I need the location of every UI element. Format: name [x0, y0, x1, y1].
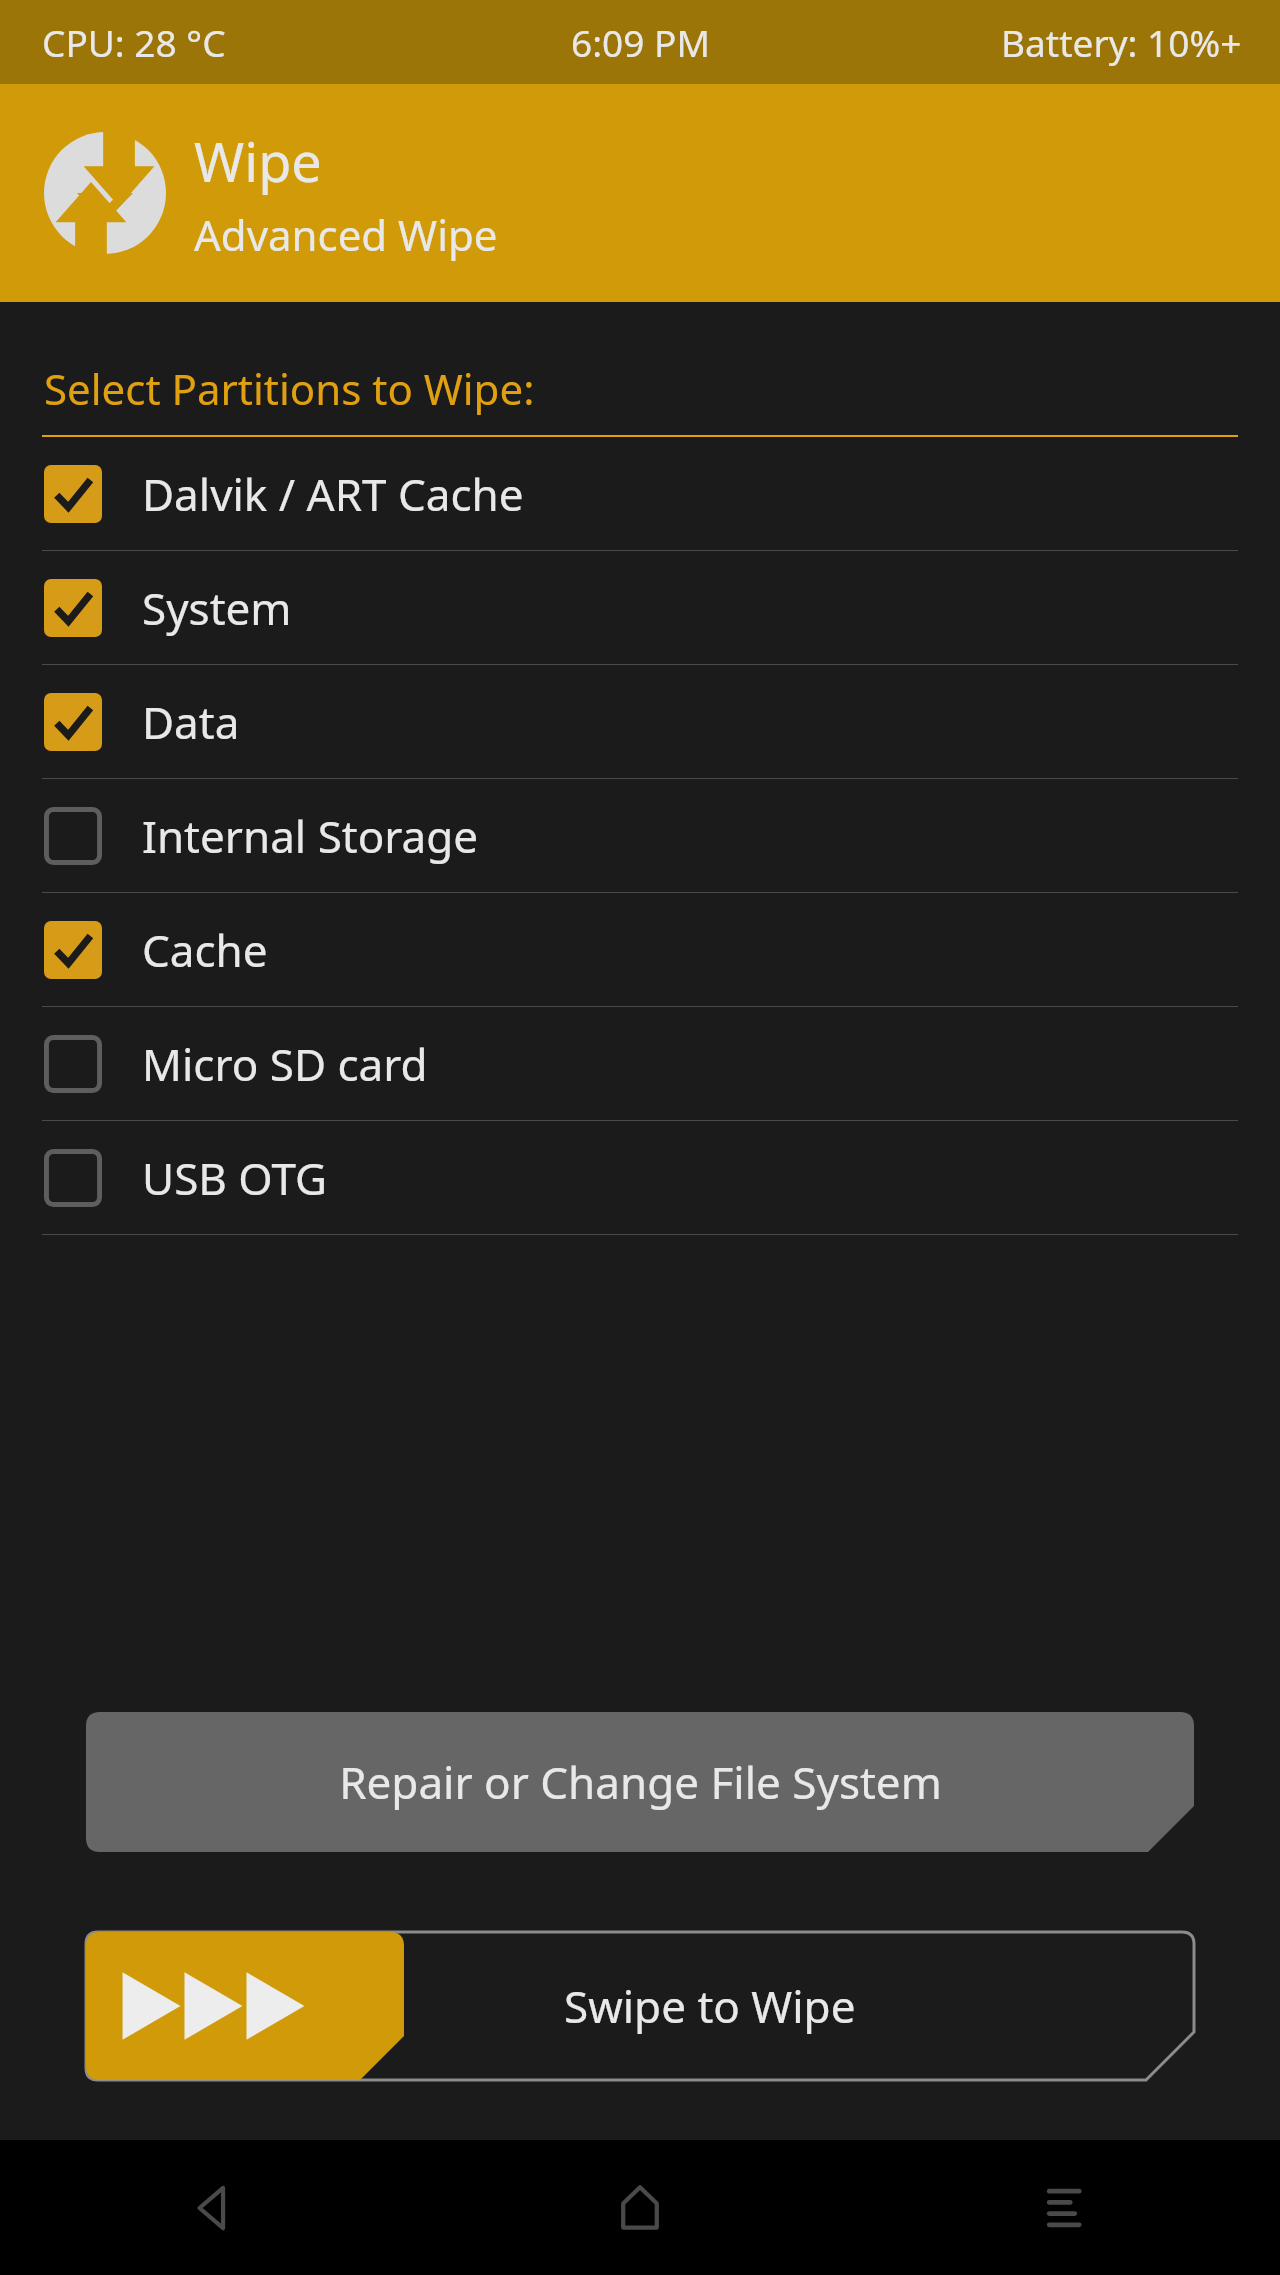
- staticText: CPU: 28 °C: [42, 17, 226, 67]
- staticText: Cache: [142, 920, 268, 980]
- button[interactable]: Recent apps: [853, 2140, 1280, 2275]
- staticText: Select Partitions to Wipe:: [44, 360, 535, 417]
- button[interactable]: Internal Storage: [0, 779, 1280, 893]
- staticText: USB OTG: [142, 1148, 328, 1208]
- button[interactable]: Swipe to Wipe: [86, 1932, 1194, 2080]
- staticText: 6:09 PM: [571, 17, 710, 67]
- button[interactable]: Wipe: [0, 84, 1280, 302]
- button[interactable]: Repair or Change File System: [86, 1712, 1194, 1852]
- button[interactable]: Data: [0, 665, 1280, 779]
- staticText: Data: [142, 692, 240, 752]
- button[interactable]: Back: [0, 2140, 426, 2275]
- button[interactable]: Cache: [0, 893, 1280, 1007]
- button[interactable]: Home: [426, 2140, 853, 2275]
- staticText: Dalvik / ART Cache: [142, 464, 524, 524]
- button[interactable]: Dalvik / ART Cache: [0, 437, 1280, 551]
- staticText: Advanced Wipe: [194, 206, 498, 263]
- staticText: Swipe to Wipe: [564, 1976, 856, 2036]
- staticText: Battery: 10%+: [1001, 17, 1242, 67]
- staticText: Repair or Change File System: [339, 1752, 942, 1812]
- staticText: Wipe: [194, 124, 322, 198]
- button[interactable]: USB OTG: [0, 1121, 1280, 1235]
- staticText: System: [142, 578, 292, 638]
- staticText: Internal Storage: [142, 806, 479, 866]
- staticText: Micro SD card: [142, 1034, 428, 1094]
- button[interactable]: Micro SD card: [0, 1007, 1280, 1121]
- button[interactable]: System: [0, 551, 1280, 665]
